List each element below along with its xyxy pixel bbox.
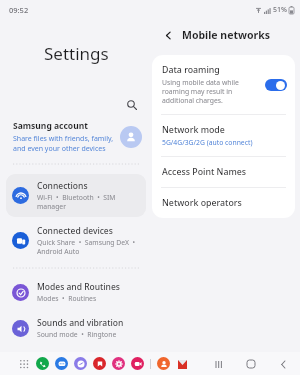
button[interactable]: Gallery bbox=[112, 357, 125, 370]
button[interactable] bbox=[265, 79, 287, 91]
staticText: Modes and Routines bbox=[37, 281, 120, 293]
button[interactable]: Connected devices bbox=[6, 219, 146, 262]
button[interactable]: Network mode bbox=[152, 115, 295, 156]
staticText: Connected devices bbox=[37, 225, 113, 237]
button[interactable]: Apps bbox=[18, 358, 30, 370]
staticText: Data roaming bbox=[162, 64, 220, 76]
staticText: Samsung account bbox=[13, 120, 88, 132]
button[interactable]: Search bbox=[122, 95, 142, 115]
staticText: Sounds and vibration bbox=[37, 317, 124, 329]
staticText: Share files with friends, family, and ev… bbox=[13, 134, 114, 154]
staticText: Access Point Names bbox=[162, 166, 247, 178]
button[interactable]: Data roaming bbox=[152, 55, 295, 114]
button[interactable]: Contacts bbox=[157, 357, 170, 370]
button[interactable]: Camera bbox=[131, 357, 144, 370]
staticText: Network operators bbox=[162, 197, 242, 209]
button[interactable]: Internet bbox=[74, 357, 87, 370]
button[interactable]: Modes and Routines bbox=[6, 275, 146, 309]
staticText: Wi-Fi • Bluetooth • SIM manager bbox=[37, 193, 140, 211]
button[interactable]: Samsung account bbox=[0, 118, 152, 160]
staticText: Using mobile data while roaming may resu… bbox=[162, 78, 259, 105]
button[interactable]: Gmail bbox=[176, 358, 188, 370]
staticText: Network mode bbox=[162, 124, 225, 136]
button[interactable]: Home bbox=[244, 357, 258, 371]
button[interactable]: Phone bbox=[36, 357, 49, 370]
staticText: Sound mode • Ringtone bbox=[37, 330, 117, 339]
staticText: Quick Share • Samsung DeX • Android Auto bbox=[37, 238, 140, 256]
button[interactable]: Back bbox=[159, 26, 177, 44]
button[interactable]: Recents bbox=[212, 357, 226, 371]
staticText: Settings bbox=[44, 42, 109, 65]
staticText: 09:52 bbox=[9, 5, 29, 15]
staticText: Modes • Routines bbox=[37, 294, 97, 303]
staticText: 5G/4G/3G/2G (auto connect) bbox=[162, 138, 253, 147]
button[interactable]: Network operators bbox=[152, 188, 295, 218]
button[interactable]: Messages bbox=[55, 357, 68, 370]
button[interactable]: Access Point Names bbox=[152, 157, 295, 187]
staticText: Mobile networks bbox=[182, 28, 271, 42]
button[interactable]: Connections bbox=[6, 174, 146, 217]
staticText: 51% bbox=[273, 5, 287, 15]
button[interactable]: Back bbox=[276, 357, 290, 371]
staticText: Connections bbox=[37, 180, 88, 192]
button[interactable]: Files bbox=[93, 357, 106, 370]
button[interactable]: Sounds and vibration bbox=[6, 311, 146, 345]
